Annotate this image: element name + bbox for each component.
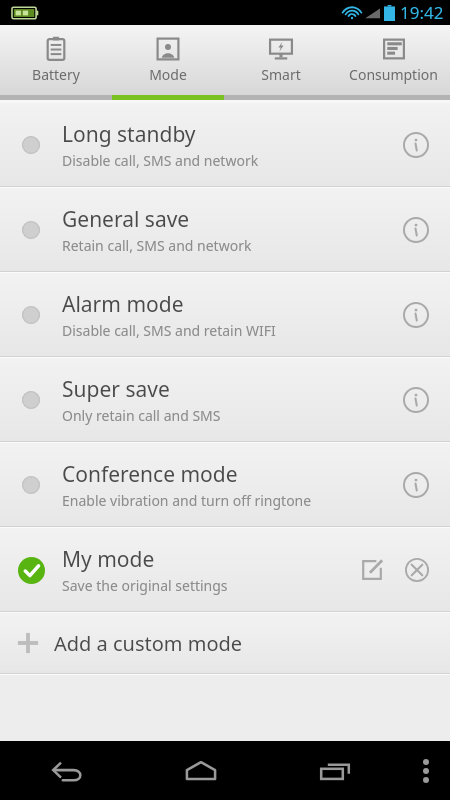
button[interactable]: My mode: [0, 528, 450, 611]
button[interactable]: Super save: [0, 358, 450, 441]
button[interactable]: Info about Long standby: [390, 119, 442, 171]
staticText: Only retain call and SMS: [62, 406, 221, 425]
staticText: Disable call, SMS and retain WIFI: [62, 321, 276, 340]
button[interactable]: Info about Super save: [390, 374, 442, 426]
button[interactable]: Recent apps: [268, 741, 402, 800]
staticText: Smart: [261, 65, 301, 84]
button[interactable]: Home: [134, 741, 268, 800]
staticText: Enable vibration and turn off ringtone: [62, 491, 312, 510]
button[interactable]: More options: [402, 741, 450, 800]
staticText: Save the original settings: [62, 576, 228, 595]
staticText: Long standby: [62, 120, 196, 149]
staticText: Alarm mode: [62, 290, 184, 319]
staticText: Battery: [32, 65, 80, 84]
button[interactable]: Info about General save: [390, 204, 442, 256]
staticText: Retain call, SMS and network: [62, 236, 252, 255]
button[interactable]: Long standby: [0, 103, 450, 186]
button[interactable]: Consumption: [337, 25, 450, 95]
button[interactable]: Smart: [224, 25, 337, 95]
button[interactable]: Edit mode: [350, 548, 394, 592]
button[interactable]: Add a custom mode: [0, 613, 450, 673]
staticText: 19:42: [400, 1, 444, 24]
button[interactable]: Battery: [0, 25, 112, 95]
staticText: Disable call, SMS and network: [62, 151, 259, 170]
button[interactable]: Alarm mode: [0, 273, 450, 356]
button[interactable]: Info about Conference mode: [390, 459, 442, 511]
staticText: General save: [62, 205, 190, 234]
button[interactable]: Back: [0, 741, 134, 800]
staticText: Super save: [62, 375, 170, 404]
button[interactable]: Delete mode: [394, 547, 440, 593]
button[interactable]: Mode: [112, 25, 224, 95]
button[interactable]: Conference mode: [0, 443, 450, 526]
staticText: My mode: [62, 545, 155, 574]
staticText: Conference mode: [62, 460, 238, 489]
staticText: Add a custom mode: [54, 630, 243, 657]
staticText: Mode: [149, 65, 187, 84]
button[interactable]: Info about Alarm mode: [390, 289, 442, 341]
staticText: Consumption: [349, 65, 438, 84]
button[interactable]: General save: [0, 188, 450, 271]
